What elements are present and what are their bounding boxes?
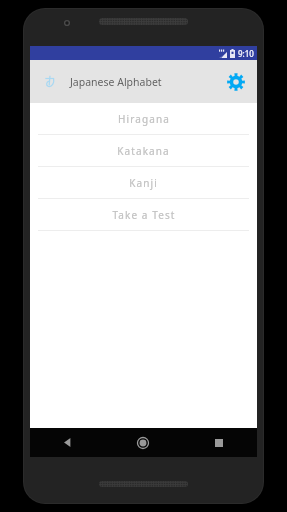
staticText: Hiragana — [118, 112, 170, 126]
button[interactable]: Take a Test — [30, 199, 257, 231]
button[interactable]: Recent apps — [181, 428, 257, 457]
button[interactable]: Settings — [218, 64, 254, 100]
staticText: Katakana — [117, 144, 170, 158]
staticText: Kanji — [129, 176, 158, 190]
button[interactable]: Back — [30, 428, 105, 457]
staticText: Japanese Alphabet — [70, 75, 162, 89]
button[interactable]: Kanji — [30, 167, 257, 199]
staticText: Take a Test — [112, 208, 176, 222]
button[interactable]: Hiragana — [30, 103, 257, 135]
button[interactable]: Home — [105, 428, 181, 457]
staticText: 9:10 — [238, 48, 254, 59]
button[interactable]: Katakana — [30, 135, 257, 167]
